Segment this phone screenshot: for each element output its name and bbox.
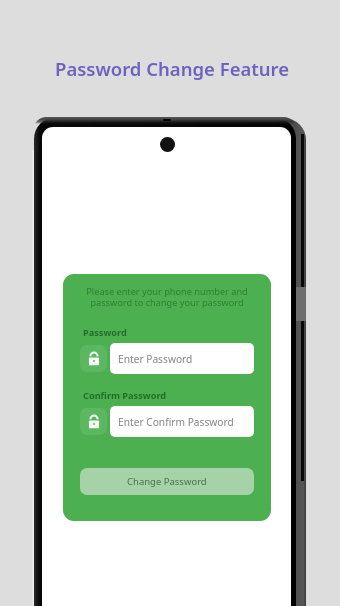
staticText: Please enter your phone number and passw… [71, 285, 263, 309]
staticText: Change Password [127, 475, 207, 488]
staticText: Confirm Password [83, 389, 167, 402]
staticText: Password [83, 326, 127, 339]
staticText: Enter Password [118, 352, 193, 366]
staticText: Enter Confirm Password [118, 415, 234, 429]
staticText: Password Change Feature [55, 56, 290, 81]
button[interactable]: Change Password [80, 468, 254, 495]
button[interactable]: Lock [80, 345, 107, 372]
button[interactable]: Enter Confirm Password [110, 406, 254, 437]
button[interactable]: Lock [80, 408, 107, 435]
button[interactable]: Enter Password [110, 343, 254, 374]
